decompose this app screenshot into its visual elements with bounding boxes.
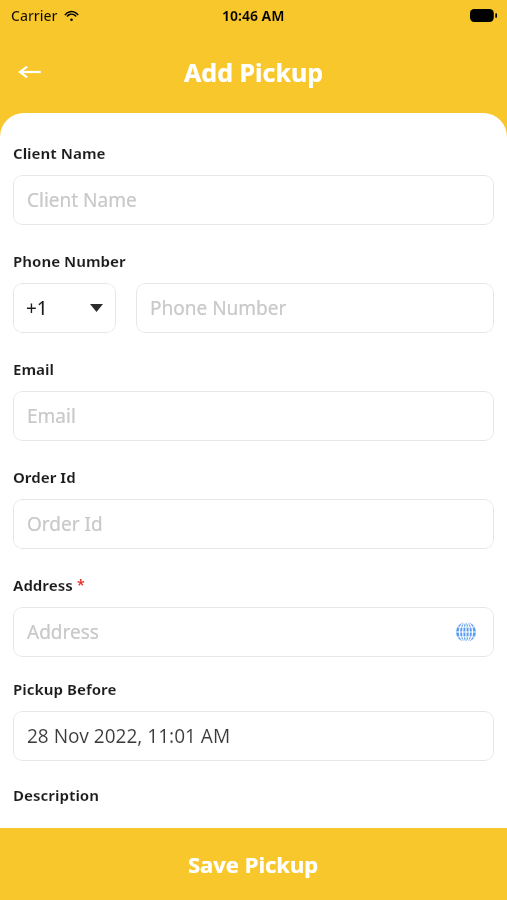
button[interactable]: Back (8, 50, 52, 94)
button[interactable]: Email (13, 391, 494, 441)
staticText: Phone Number (13, 251, 126, 271)
staticText: 28 Nov 2022, 11:01 AM (27, 723, 231, 749)
staticText: Carrier (11, 6, 58, 25)
staticText: Phone Number (150, 295, 287, 321)
button[interactable]: Phone Number (136, 283, 494, 333)
staticText: Order Id (27, 511, 103, 537)
staticText: Order Id (13, 467, 76, 487)
staticText: Client Name (13, 143, 106, 163)
staticText: Email (13, 359, 54, 379)
staticText: 10:46 AM (222, 6, 285, 25)
staticText: Address (27, 619, 99, 645)
staticText: Save Pickup (188, 849, 319, 879)
button[interactable]: Save Pickup (0, 828, 507, 900)
button[interactable]: +1 (13, 283, 116, 333)
staticText: Description (13, 785, 99, 805)
button[interactable]: 28 Nov 2022, 11:01 AM (13, 711, 494, 761)
staticText: Add Pickup (184, 55, 323, 89)
staticText: Pickup Before (13, 679, 117, 699)
button[interactable]: Client Name (13, 175, 494, 225)
button[interactable]: Pick location on map (452, 618, 480, 646)
button[interactable]: Address (13, 607, 494, 657)
staticText: Client Name (27, 187, 137, 213)
staticText: +1 (26, 295, 48, 321)
button[interactable]: Order Id (13, 499, 494, 549)
staticText: * (77, 575, 85, 594)
staticText: Email (27, 403, 76, 429)
staticText: Address (13, 575, 73, 595)
